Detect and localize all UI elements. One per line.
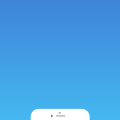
button[interactable]: Continue [48, 113, 68, 118]
